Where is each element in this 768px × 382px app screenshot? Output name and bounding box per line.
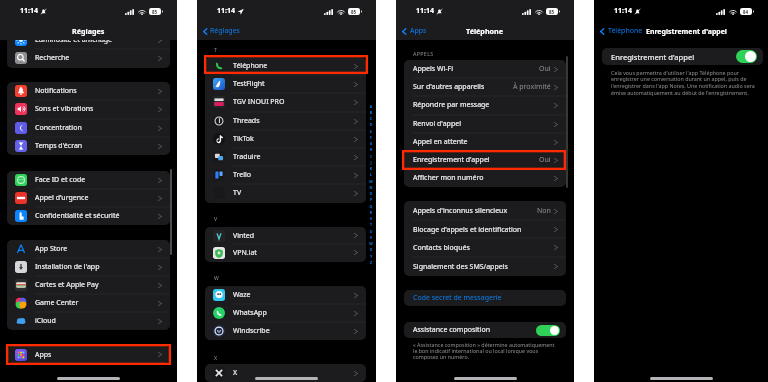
- button[interactable]: Installation de l'app: [7, 258, 170, 276]
- button[interactable]: Sur d'autres appareils: [404, 78, 566, 96]
- staticText: G: [368, 141, 374, 146]
- button[interactable]: Téléphone: [205, 57, 366, 75]
- staticText: Appel en attente: [413, 137, 468, 147]
- button[interactable]: App Store: [7, 240, 170, 258]
- button[interactable]: Apps: [7, 346, 170, 363]
- button[interactable]: Concentration: [7, 119, 170, 137]
- staticText: « Assistance composition » détermine aut…: [413, 341, 555, 361]
- button[interactable]: Réglages: [201, 26, 240, 36]
- staticText: Oui: [539, 155, 551, 165]
- staticText: S: [368, 216, 374, 221]
- staticText: Game Center: [35, 298, 79, 308]
- staticText: App Store: [35, 244, 68, 254]
- staticText: O: [368, 191, 374, 196]
- button[interactable]: Recherche: [7, 49, 170, 67]
- staticText: U: [368, 229, 374, 234]
- button[interactable]: Luminosité et affichage: [7, 31, 170, 49]
- button[interactable]: TikTok: [205, 130, 366, 148]
- staticText: Concentration: [35, 123, 82, 133]
- button[interactable]: Temps d'écran: [7, 137, 170, 155]
- button[interactable]: Téléphone: [598, 26, 643, 36]
- staticText: 85: [152, 9, 158, 15]
- button[interactable]: Cartes et Apple Pay: [7, 276, 170, 294]
- staticText: Blocage d'appels et identification: [413, 225, 522, 235]
- button[interactable]: Répondre par message: [404, 96, 566, 114]
- staticText: K: [368, 166, 374, 171]
- staticText: J: [368, 160, 374, 165]
- staticText: Vinted: [233, 231, 255, 241]
- staticText: Windscribe: [233, 326, 270, 336]
- button[interactable]: Activer: [736, 50, 757, 63]
- button[interactable]: Windscribe: [205, 322, 366, 340]
- button[interactable]: Blocage d'appels et identification: [404, 220, 566, 239]
- staticText: I: [368, 154, 374, 159]
- button[interactable]: Waze: [205, 286, 366, 304]
- button[interactable]: Vinted: [205, 227, 366, 244]
- staticText: C: [368, 116, 374, 121]
- staticText: X: [368, 247, 374, 252]
- staticText: TikTok: [233, 134, 254, 144]
- staticText: Appel d'urgence: [35, 193, 89, 203]
- button[interactable]: Contacts bloqués: [404, 238, 566, 257]
- staticText: H: [368, 147, 374, 152]
- staticText: A: [368, 104, 374, 109]
- button[interactable]: Appels d'inconnus silencieux: [404, 201, 566, 220]
- button[interactable]: Notifications: [7, 82, 170, 100]
- staticText: E: [368, 129, 374, 134]
- staticText: Téléphone: [466, 26, 504, 36]
- staticText: 85: [351, 9, 357, 15]
- button[interactable]: Threads: [205, 112, 366, 130]
- button[interactable]: X: [205, 364, 366, 382]
- staticText: Sons et vibrations: [35, 104, 94, 114]
- button[interactable]: Game Center: [7, 294, 170, 312]
- staticText: VPN.lat: [233, 248, 257, 258]
- button[interactable]: Appel d'urgence: [7, 189, 170, 207]
- button[interactable]: Enregistrement d'appel: [404, 151, 566, 169]
- button[interactable]: Appels Wi-Fi: [404, 60, 566, 78]
- button[interactable]: Face ID et code: [7, 171, 170, 189]
- staticText: L: [368, 172, 374, 177]
- staticText: Téléphone: [608, 26, 643, 36]
- button[interactable]: Afficher mon numéro: [404, 169, 566, 187]
- staticText: iCloud: [35, 316, 56, 326]
- button[interactable]: Trello: [205, 166, 366, 184]
- staticText: F: [368, 135, 374, 140]
- staticText: Code secret de messagerie: [413, 293, 502, 303]
- button[interactable]: TV: [205, 184, 366, 202]
- staticText: V: [368, 235, 374, 240]
- staticText: T: [214, 46, 218, 53]
- staticText: Oui: [539, 64, 551, 74]
- button[interactable]: Code secret de messagerie: [404, 290, 566, 306]
- staticText: 84: [743, 9, 749, 15]
- button[interactable]: TestFlight: [205, 75, 366, 93]
- staticText: Installation de l'app: [35, 262, 100, 272]
- button[interactable]: Sons et vibrations: [7, 100, 170, 118]
- staticText: Enregistrement d'appel: [611, 52, 695, 62]
- button[interactable]: iCloud: [7, 312, 170, 330]
- button[interactable]: Signalement des SMS/appels: [404, 257, 566, 276]
- button[interactable]: Activer: [536, 325, 560, 336]
- button[interactable]: Appel en attente: [404, 133, 566, 151]
- button[interactable]: Confidentialité et sécurité: [7, 207, 170, 225]
- button[interactable]: Traduire: [205, 148, 366, 166]
- button[interactable]: VPN.lat: [205, 244, 366, 261]
- staticText: B: [368, 110, 374, 115]
- button[interactable]: Renvoi d'appel: [404, 115, 566, 133]
- staticText: Sur d'autres appareils: [413, 82, 485, 92]
- staticText: APPELS: [413, 50, 434, 57]
- button[interactable]: WhatsApp: [205, 304, 366, 322]
- staticText: Répondre par message: [413, 100, 490, 110]
- staticText: TV: [233, 188, 242, 198]
- staticText: 11:14: [20, 6, 38, 16]
- staticText: Threads: [233, 116, 260, 126]
- staticText: Enregistrement d'appel: [646, 27, 727, 36]
- staticText: Recherche: [35, 53, 70, 63]
- staticText: R: [368, 210, 374, 215]
- button[interactable]: TGV INOUI PRO: [205, 93, 366, 111]
- button[interactable]: Apps: [400, 26, 427, 36]
- staticText: Téléphone: [233, 61, 268, 71]
- staticText: Z: [368, 260, 374, 265]
- staticText: TestFlight: [233, 79, 265, 89]
- staticText: W: [368, 241, 374, 246]
- staticText: X: [214, 354, 218, 361]
